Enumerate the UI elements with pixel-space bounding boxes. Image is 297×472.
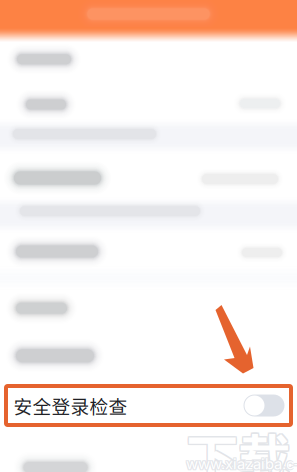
staticText: 下载吧 xyxy=(187,418,291,472)
button[interactable] xyxy=(0,288,297,330)
staticText: 下载吧 xyxy=(187,417,291,472)
staticText: www.xiazaiba.com xyxy=(187,454,287,472)
staticText: 下载吧 xyxy=(186,418,290,472)
staticText: www.xiazaiba.com xyxy=(186,454,297,472)
staticText: 下载吧 xyxy=(187,419,291,472)
staticText: www.xiazaiba.com xyxy=(186,456,297,472)
staticText: 下载吧 xyxy=(185,419,289,472)
staticText: 下载吧 xyxy=(185,418,289,472)
staticText: www.xiazaiba.com xyxy=(185,454,297,472)
staticText: 下载吧 xyxy=(186,417,290,472)
staticText: 下载吧 xyxy=(186,419,290,472)
staticText: www.xiazaiba.com xyxy=(185,455,297,472)
button[interactable]: 安全登录检查 xyxy=(6,386,291,425)
button[interactable] xyxy=(0,122,297,152)
staticText: www.xiazaiba.com xyxy=(185,456,297,472)
button[interactable] xyxy=(0,27,297,78)
staticText: www.xiazaiba.com xyxy=(187,456,287,472)
staticText: www.xiazaiba.com xyxy=(186,455,297,472)
button[interactable] xyxy=(0,330,297,380)
button[interactable] xyxy=(0,201,297,231)
button[interactable] xyxy=(0,231,297,269)
button[interactable] xyxy=(0,152,297,201)
staticText: www.xiazaiba.com xyxy=(187,455,287,472)
button[interactable] xyxy=(0,78,297,122)
staticText: 安全登录检查 xyxy=(13,392,127,419)
staticText: 下载吧 xyxy=(185,417,289,472)
